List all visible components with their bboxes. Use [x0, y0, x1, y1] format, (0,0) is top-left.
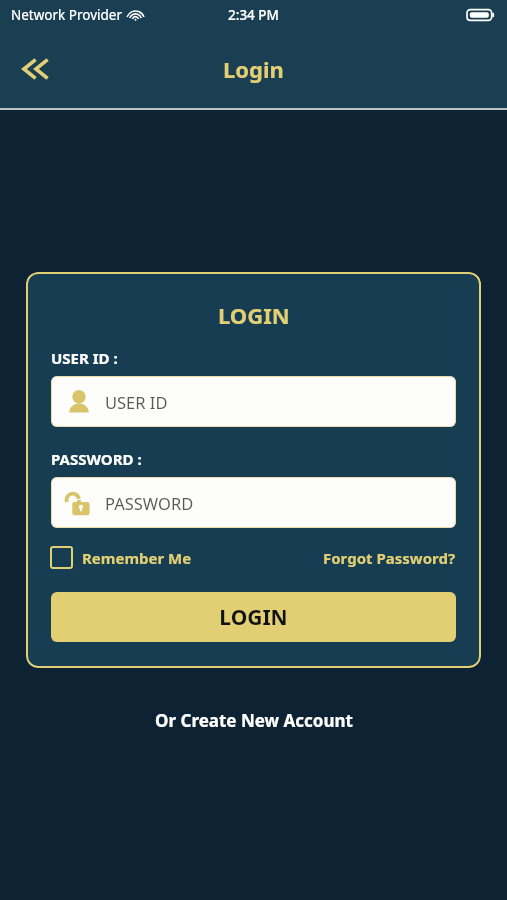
staticText: LOGIN	[218, 300, 290, 330]
staticText: USER ID	[105, 391, 168, 413]
button[interactable]: USER ID	[51, 376, 456, 427]
staticText: 2:34 PM	[228, 6, 279, 24]
button[interactable]: Or Create New Account	[0, 709, 507, 732]
staticText: Forgot Password?	[323, 548, 456, 568]
staticText: LOGIN	[219, 603, 288, 632]
button[interactable]: Back	[11, 45, 59, 93]
staticText: PASSWORD :	[51, 449, 142, 469]
staticText: Network Provider	[11, 6, 123, 24]
staticText: Or Create New Account	[155, 709, 353, 732]
staticText: Remember Me	[82, 548, 192, 568]
button[interactable]: Forgot Password?	[323, 548, 456, 568]
button[interactable]: LOGIN	[51, 592, 456, 642]
button[interactable]: PASSWORD	[51, 477, 456, 528]
staticText: USER ID :	[51, 348, 118, 368]
staticText: PASSWORD	[105, 492, 194, 514]
button[interactable]: Remember Me	[51, 547, 192, 568]
staticText: Login	[223, 54, 284, 84]
